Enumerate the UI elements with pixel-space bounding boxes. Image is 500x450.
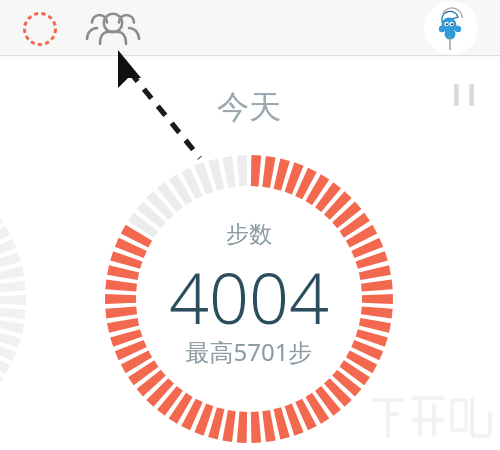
button[interactable]: Pause (444, 76, 484, 114)
staticText: 步数 (139, 220, 359, 450)
button[interactable]: Start activity (20, 10, 60, 48)
staticText: 4004 (89, 249, 409, 450)
button[interactable]: Friends (88, 8, 138, 50)
staticText: 最高5701步 (109, 335, 389, 450)
button[interactable]: Profile (424, 1, 478, 55)
staticText: 今天 (139, 87, 359, 450)
